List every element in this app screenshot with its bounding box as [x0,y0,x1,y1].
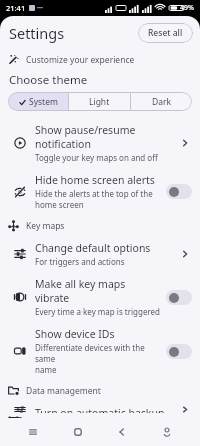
staticText: System [29,96,58,108]
staticText: Customize your experience [26,54,135,66]
button[interactable]: Turn on automatic backup [0,401,200,418]
button[interactable]: Show pause/resume notification [0,118,200,168]
staticText: Data management [26,385,101,397]
staticText: Show pause/resume notification [35,123,174,151]
staticText: Light [89,96,110,108]
staticText: For triggers and actions [35,256,125,267]
staticText: Turn on automatic backup [35,406,165,413]
staticText: Settings [9,23,65,43]
button[interactable]: Hide home screen alerts [166,184,192,199]
button[interactable]: Assistant [158,423,176,441]
staticText: Change default options [35,241,151,255]
staticText: Choose theme [9,72,88,88]
staticText: Dark [152,96,172,108]
button[interactable]: Light [69,92,130,111]
button[interactable]: Reset all [138,23,193,43]
staticText: Reset all [148,27,183,39]
staticText: Hide the alerts at the top of the home s… [35,188,153,210]
button[interactable]: Back [113,423,131,441]
button[interactable]: Make all key maps vibrate [0,272,200,322]
button[interactable]: Change default options [0,236,200,272]
button[interactable]: Home [69,423,87,441]
button[interactable]: Hide home screen alerts [0,168,200,215]
staticText: Differentiate devices with the same name [35,342,162,375]
staticText: Make all key maps vibrate [35,277,162,305]
button[interactable]: Make all key maps vibrate [166,290,192,305]
staticText: 21:41 [6,3,26,13]
button[interactable]: Dark [131,92,192,111]
staticText: 49% [180,3,194,13]
button[interactable]: System [8,92,68,111]
button[interactable]: Show device IDs [166,344,192,359]
staticText: ··· [37,3,43,13]
staticText: Hide home screen alerts [35,173,155,187]
staticText: Show device IDs [35,327,115,341]
staticText: Key maps [26,220,65,232]
button[interactable]: Show device IDs [0,322,200,380]
button[interactable]: Recents [24,423,42,441]
staticText: Toggle your key maps on and off [35,152,158,163]
staticText: Every time a key map is triggered [35,306,160,317]
